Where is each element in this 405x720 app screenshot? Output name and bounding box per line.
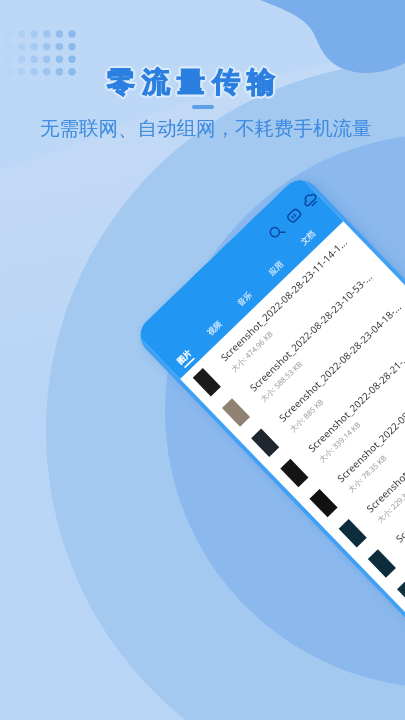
button[interactable]: Screenshot_2022-08-28-23-10-53-... (209, 251, 402, 439)
staticText: 文档 (298, 228, 317, 247)
staticText: Screenshot_2022-08-28-21-... (305, 350, 405, 455)
staticText: 零流量传输 (102, 64, 277, 99)
staticText: 大小: 114 KB (404, 517, 405, 555)
staticText: 无需联网、自动组网，不耗费手机流量 (40, 116, 372, 141)
staticText: Screenshot_2022-08-28-23-11-14-1... (217, 235, 350, 364)
staticText: Screenshot_2022-08... (392, 463, 405, 545)
staticText: 大小: 78.35 KB (346, 452, 389, 494)
button[interactable]: 文档 (291, 221, 325, 254)
button[interactable]: Screenshot_2022-08-2... (326, 372, 405, 560)
button[interactable]: Transfer (300, 189, 321, 210)
staticText: 图片 (175, 348, 193, 366)
button[interactable]: Screenshot_2022-08-28-... (297, 342, 405, 530)
staticText: Screenshot_2022-08-28-23-04-18-... (276, 299, 405, 425)
staticText: 零流量传输 (102, 66, 277, 101)
staticText: Screenshot_2022-08-2... (363, 427, 405, 515)
staticText: 应用 (267, 259, 285, 277)
staticText: 视频 (205, 319, 223, 337)
staticText: 音乐 (235, 290, 254, 308)
staticText: 大小: 229.3 KB (375, 483, 405, 525)
staticText: Screenshot_2022-08-28-23-10-53-... (246, 269, 375, 394)
button[interactable]: 图片 (167, 340, 201, 374)
staticText: 零流量传输 (101, 65, 276, 100)
staticText: 大小: 885 KB (287, 396, 326, 434)
staticText: 大小: 339.14 KB (317, 419, 362, 464)
button[interactable]: 应用 (259, 251, 293, 285)
staticText: 零流量传输 (103, 67, 278, 102)
button[interactable]: Screenshot_2022-08-28-23-04-18-... (238, 282, 405, 470)
staticText: 零流量传输 (105, 65, 280, 100)
button[interactable]: Screenshot_2022-08... (355, 403, 405, 590)
staticText: 零流量传输 (103, 63, 278, 98)
staticText: 零流量传输 (104, 66, 279, 101)
button[interactable]: 音乐 (227, 282, 261, 316)
staticText: 零流量传输 (104, 64, 279, 99)
button[interactable]: 视频 (197, 311, 231, 345)
button[interactable]: Screenshot_2022-08-28-23-11-14-1... (180, 221, 372, 409)
staticText: 大小: 588.53 KB (258, 359, 304, 404)
button[interactable]: Screenshot_2022-08-28-21-... (268, 312, 405, 500)
button[interactable]: Storage (283, 205, 304, 226)
staticText: 大小: 474.96 KB (229, 329, 275, 374)
button[interactable]: Screenshot_2022-0... (384, 433, 405, 621)
staticText: 零流量传输 (103, 65, 278, 100)
button[interactable]: Search (266, 221, 287, 243)
staticText: Screenshot_2022-08-28-... (334, 390, 405, 485)
